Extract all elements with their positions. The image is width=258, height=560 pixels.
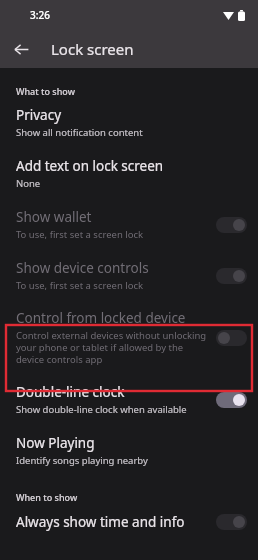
button[interactable]: Now Playing [0, 425, 258, 476]
staticText: Add text on lock screen [16, 157, 164, 175]
button[interactable]: Toggle [216, 268, 247, 284]
button[interactable]: Show device controls [0, 250, 258, 301]
staticText: Show all notification content [16, 126, 143, 139]
staticText: None [16, 177, 41, 190]
button[interactable]: Toggle [216, 330, 247, 346]
button[interactable]: Add text on lock screen [0, 148, 258, 199]
staticText: When to show [16, 491, 258, 503]
button[interactable]: Toggle [216, 217, 247, 233]
button[interactable]: Toggle [216, 514, 247, 530]
staticText: To use, first set a screen lock [16, 279, 144, 292]
button[interactable]: Show wallet [0, 199, 258, 250]
staticText: Identify songs playing nearby [16, 454, 148, 467]
staticText: To use, first set a screen lock [16, 228, 144, 241]
staticText: What to show [16, 85, 258, 97]
button[interactable]: Always show time and info [0, 506, 258, 541]
staticText: Control external devices without unlocki… [16, 329, 208, 366]
staticText: Privacy [16, 106, 62, 124]
button[interactable]: Privacy [0, 100, 258, 148]
staticText: Show wallet [16, 208, 92, 226]
staticText: Double-line clock [16, 383, 125, 401]
button[interactable]: Control from locked device [0, 301, 258, 374]
staticText: Show device controls [16, 259, 149, 277]
staticText: Show double-line clock when available [16, 403, 187, 416]
button[interactable]: Toggle [216, 392, 247, 408]
staticText: Now Playing [16, 434, 95, 452]
button[interactable]: Double-line clock [0, 374, 258, 425]
staticText: Lock screen [51, 39, 134, 59]
staticText: Control from locked device [16, 309, 186, 327]
staticText: Always show time and info [16, 513, 185, 531]
button[interactable]: Back [9, 37, 33, 61]
staticText: 3:26 [30, 8, 50, 22]
